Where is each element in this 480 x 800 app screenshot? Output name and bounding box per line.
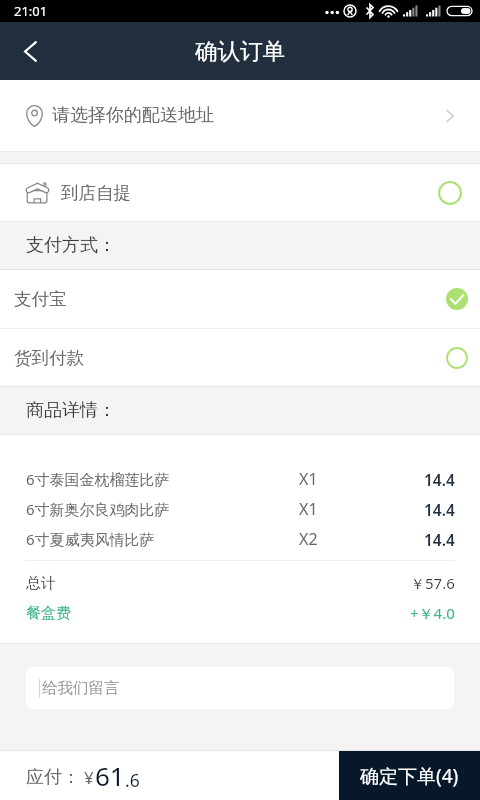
staticText: 请选择你的配送地址 — [52, 104, 214, 127]
button[interactable]: 确定下单(4) — [339, 751, 480, 800]
staticText: X1 — [299, 498, 318, 520]
button[interactable]: 支付宝 — [0, 270, 480, 328]
staticText: X2 — [299, 528, 318, 550]
staticText: 应付： — [26, 766, 80, 789]
button[interactable]: 给我们留言 — [26, 667, 454, 709]
button[interactable]: 到店自提 — [0, 164, 480, 221]
button[interactable]: 请选择你的配送地址 — [0, 80, 480, 151]
staticText: 6寸夏威夷风情比萨 — [26, 529, 155, 549]
staticText: 货到付款 — [14, 347, 84, 369]
staticText: 给我们留言 — [42, 678, 120, 698]
staticText: 餐盒费 — [26, 604, 71, 623]
staticText: ¥ — [84, 766, 94, 789]
button[interactable]: 货到付款 — [0, 329, 480, 386]
staticText: 商品详情： — [26, 399, 116, 422]
staticText: 6寸新奥尔良鸡肉比萨 — [26, 499, 170, 519]
staticText: 确认订单 — [195, 37, 285, 65]
staticText: 确定下单(4) — [360, 763, 459, 789]
staticText: 支付方式： — [26, 234, 116, 257]
staticText: 14.4 — [424, 499, 455, 520]
button[interactable]: Back — [0, 22, 61, 80]
staticText: ￥57.6 — [410, 573, 455, 593]
staticText: 14.4 — [424, 469, 455, 490]
staticText: 总计 — [26, 574, 56, 593]
staticText: 14.4 — [424, 529, 455, 550]
staticText: +￥4.0 — [410, 603, 455, 623]
staticText: 21:01 — [14, 2, 48, 20]
staticText: 61 — [95, 758, 125, 793]
staticText: 到店自提 — [61, 182, 131, 204]
staticText: 支付宝 — [14, 288, 67, 310]
staticText: 6寸泰国金枕榴莲比萨 — [26, 469, 170, 489]
staticText: X1 — [299, 468, 318, 490]
staticText: .6 — [125, 768, 140, 792]
